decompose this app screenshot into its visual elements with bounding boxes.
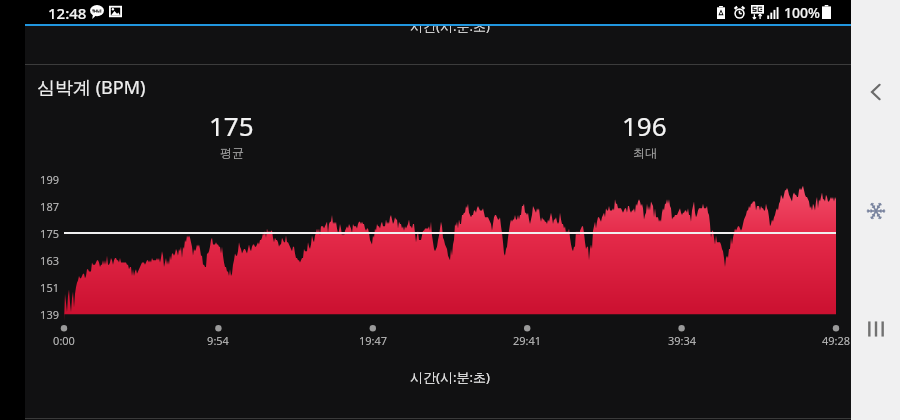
staticText: 39:34 <box>652 333 712 348</box>
button[interactable]: Recent apps <box>854 307 898 351</box>
staticText: 100% <box>784 3 820 22</box>
staticText: 29:41 <box>497 333 557 348</box>
staticText: 19:47 <box>343 333 403 348</box>
staticText: 175 <box>209 108 254 143</box>
staticText: 9:54 <box>188 333 248 348</box>
staticText: 163 <box>35 253 59 268</box>
staticText: 139 <box>35 307 59 322</box>
staticText: 151 <box>35 280 59 295</box>
staticText: 175 <box>35 226 59 241</box>
staticText: 평균 <box>220 145 244 160</box>
staticText: 199 <box>35 172 59 187</box>
staticText: 0:00 <box>34 333 94 348</box>
staticText: 187 <box>35 199 59 214</box>
staticText: 시간(시:분:초) <box>64 17 836 35</box>
staticText: 196 <box>622 108 667 143</box>
button[interactable]: Home <box>854 189 898 233</box>
staticText: 최대 <box>633 145 657 160</box>
button[interactable]: 심박계 (BPM) 상세 보기 <box>25 65 851 418</box>
staticText: 심박계 (BPM) <box>37 75 146 100</box>
staticText: 12:48 <box>48 3 87 23</box>
staticText: 49:28 <box>806 333 851 348</box>
button[interactable]: Back <box>854 70 898 114</box>
staticText: 시간(시:분:초) <box>64 368 836 386</box>
